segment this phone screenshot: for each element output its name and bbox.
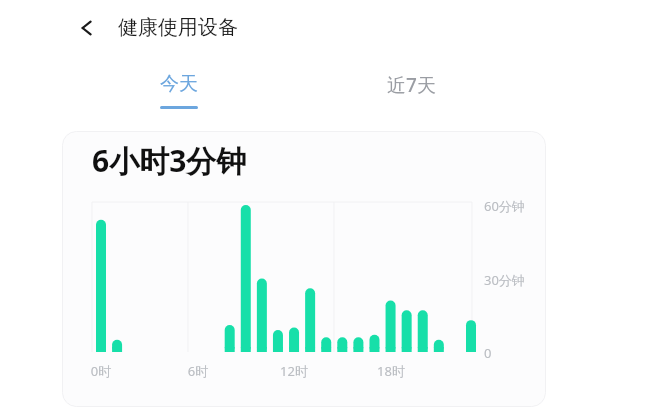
staticText: 0时: [81, 362, 121, 380]
staticText: 60分钟: [484, 197, 525, 215]
staticText: 6小时3分钟: [92, 140, 247, 181]
staticText: 12时: [274, 362, 314, 380]
button[interactable]: Back: [70, 11, 104, 45]
staticText: 今天: [160, 72, 198, 96]
staticText: 近7天: [387, 72, 436, 98]
button[interactable]: 今天: [62, 55, 295, 131]
staticText: 30分钟: [484, 271, 525, 289]
staticText: 健康使用设备: [118, 15, 238, 40]
button[interactable]: 6小时3分钟: [62, 131, 546, 407]
staticText: 18时: [371, 362, 411, 380]
staticText: 6时: [178, 362, 218, 380]
staticText: 0: [484, 344, 492, 362]
button[interactable]: 近7天: [295, 55, 528, 131]
